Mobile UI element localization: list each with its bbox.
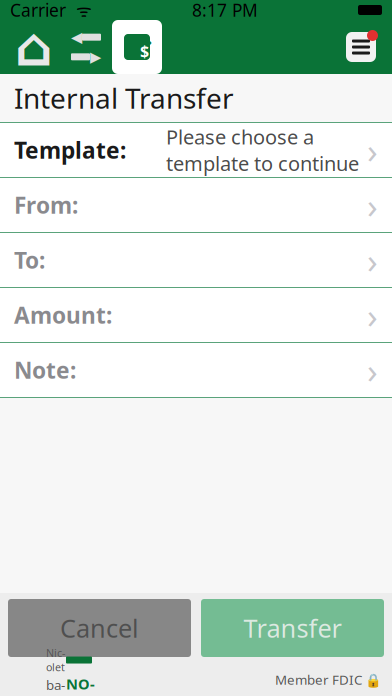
staticText: ➜ [136,31,153,54]
staticText: To: [14,245,45,275]
staticText: Internal Transfer [14,79,234,117]
staticText: Transfer [243,611,341,645]
staticText: bank [46,676,65,696]
staticText: Amount: [14,300,112,330]
staticText: $ [140,40,149,62]
button[interactable]: Template: [0,123,392,177]
button[interactable]: To: [0,233,392,287]
staticText: ◀ [71,29,82,45]
staticText: Nicolet [46,646,65,674]
button[interactable]: Home [8,20,60,74]
staticText: NOW [66,674,95,696]
staticText: › [367,347,378,393]
staticText: Carrier [10,0,66,21]
staticText: Cancel [60,611,139,645]
staticText: › [367,182,378,228]
staticText: From: [14,190,78,220]
button[interactable]: Transfers [60,20,112,74]
staticText: ᯤ [66,0,92,21]
staticText: › [367,292,378,338]
staticText: 🔒 [362,671,382,688]
staticText: Member FDIC [275,671,362,688]
staticText: Please choose a template to continue [166,123,359,176]
button[interactable]: Transfer [201,599,384,657]
staticText: Note: [14,355,76,385]
button[interactable]: Note: [0,343,392,397]
button[interactable]: Internal Transfer [112,20,162,74]
staticText: › [367,127,378,173]
staticText: Template: [14,135,126,165]
button[interactable]: Menu [338,20,384,74]
button[interactable]: Cancel [8,599,191,657]
staticText: ▶ [90,48,101,65]
staticText: 8:17 PM [192,0,258,21]
button[interactable]: From: [0,178,392,232]
button[interactable]: Amount: [0,288,392,342]
staticText: ⌂ [15,17,53,77]
staticText: › [367,237,378,283]
